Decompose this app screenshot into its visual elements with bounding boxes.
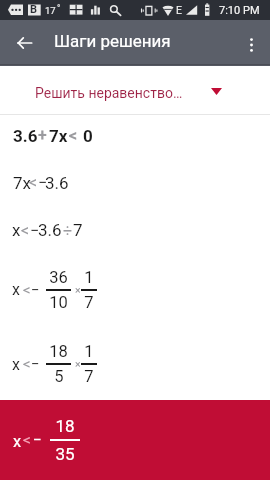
staticText: 7 — [84, 367, 94, 386]
staticText: − — [31, 355, 40, 373]
staticText: 10 — [49, 293, 68, 312]
staticText: < — [21, 221, 30, 240]
staticText: Шаги решения — [54, 31, 171, 51]
staticText: < — [23, 431, 31, 449]
button[interactable]: Back — [17, 33, 32, 53]
staticText: 36 — [49, 268, 68, 287]
staticText: 18 — [49, 342, 68, 361]
button[interactable]: x — [0, 206, 270, 254]
staticText: 7 — [84, 293, 94, 312]
staticText: ° — [57, 3, 61, 14]
staticText: × — [75, 284, 81, 296]
button[interactable]: 3.6 — [0, 112, 270, 159]
staticText: x — [13, 432, 22, 451]
staticText: 17 — [45, 5, 56, 16]
staticText: E — [176, 4, 182, 16]
staticText: 1 — [84, 268, 94, 287]
button[interactable]: Решить неравенство… — [0, 66, 270, 115]
staticText: 35 — [55, 444, 75, 464]
staticText: x — [12, 220, 21, 240]
staticText: ÷ — [63, 221, 73, 240]
staticText: − — [30, 221, 40, 240]
staticText: B — [30, 3, 38, 16]
button[interactable]: 7x — [0, 159, 270, 206]
staticText: 7x — [13, 173, 31, 193]
staticText: − — [31, 281, 40, 299]
staticText: 1 — [84, 342, 94, 361]
staticText: 3.6 — [45, 173, 69, 193]
staticText: + — [38, 126, 47, 145]
staticText: × — [75, 358, 81, 370]
staticText: x — [12, 280, 20, 299]
staticText: − — [33, 431, 42, 449]
staticText: 7x — [49, 126, 68, 146]
button[interactable]: x — [0, 254, 270, 325]
staticText: 0 — [83, 126, 93, 146]
staticText: < — [23, 281, 31, 299]
staticText: < — [69, 126, 78, 145]
button[interactable]: x — [0, 325, 270, 403]
staticText: x — [12, 355, 20, 374]
staticText: 3.6 — [13, 126, 38, 146]
staticText: < — [29, 173, 38, 192]
staticText: 7 — [73, 220, 83, 240]
staticText: Решить неравенство… — [35, 85, 183, 101]
button[interactable]: x — [0, 400, 270, 480]
staticText: 5 — [54, 367, 64, 386]
staticText: − — [38, 173, 48, 192]
staticText: 18 — [55, 416, 75, 436]
staticText: 3.6 — [38, 220, 62, 240]
staticText: 7:10 PM — [219, 4, 260, 17]
staticText: < — [23, 355, 31, 373]
button[interactable]: More options — [242, 34, 262, 54]
